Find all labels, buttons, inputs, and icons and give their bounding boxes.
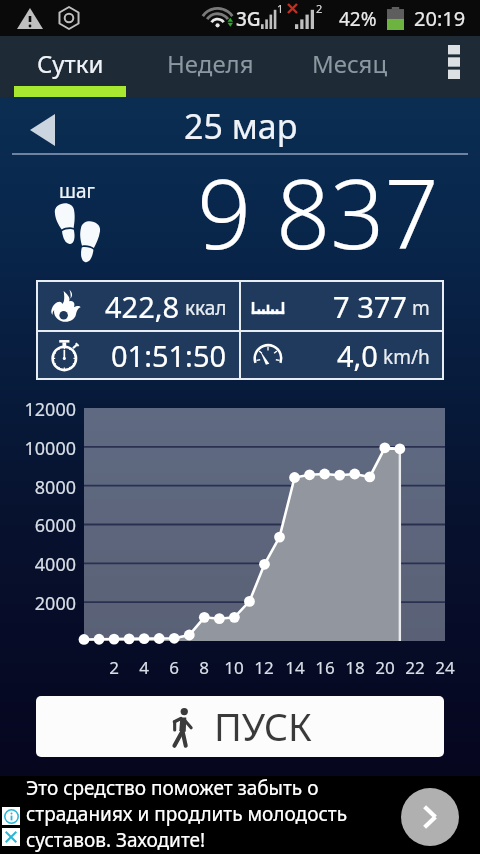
button[interactable]: More options bbox=[420, 36, 480, 97]
button[interactable]: Сутки bbox=[0, 36, 140, 97]
button[interactable]: Это средство поможет забыть о страданиях… bbox=[0, 776, 480, 854]
staticText: 20:19 bbox=[414, 5, 466, 32]
staticText: 10000 bbox=[0, 436, 76, 461]
staticText: 2000 bbox=[0, 591, 76, 616]
button[interactable]: 422,8 bbox=[38, 282, 239, 330]
button[interactable]: ПУСК bbox=[36, 696, 444, 757]
button[interactable]: Неделя bbox=[140, 36, 280, 97]
staticText: 18 bbox=[335, 656, 375, 679]
staticText: 8000 bbox=[0, 475, 76, 500]
staticText: Месяц bbox=[312, 47, 388, 80]
staticText: km/h bbox=[383, 344, 430, 370]
button[interactable]: Месяц bbox=[280, 36, 420, 97]
staticText: 10 bbox=[214, 656, 254, 679]
staticText: 42% bbox=[339, 6, 377, 32]
staticText: 9 837 bbox=[197, 147, 439, 255]
staticText: ПУСК bbox=[214, 700, 312, 752]
staticText: 14 bbox=[275, 656, 315, 679]
button[interactable]: Open advertisement bbox=[401, 788, 459, 846]
staticText: 12000 bbox=[0, 397, 76, 422]
staticText: Это средство поможет забыть о страданиях… bbox=[26, 775, 347, 853]
staticText: 16 bbox=[305, 656, 345, 679]
staticText: m bbox=[412, 295, 430, 321]
staticText: 422,8 bbox=[105, 287, 180, 326]
button[interactable]: Previous day bbox=[18, 106, 66, 154]
staticText: 01:51:50 bbox=[111, 336, 227, 375]
button[interactable]: 01:51:50 bbox=[38, 332, 239, 378]
staticText: 6000 bbox=[0, 513, 76, 538]
staticText: шаг bbox=[59, 178, 95, 204]
staticText: 7 377 bbox=[333, 287, 407, 326]
staticText: 6 bbox=[154, 656, 194, 679]
staticText: 12 bbox=[244, 656, 284, 679]
staticText: ккал bbox=[185, 295, 227, 321]
staticText: 3G bbox=[236, 6, 261, 32]
button[interactable]: 4,0 bbox=[241, 332, 442, 378]
staticText: Сутки bbox=[37, 47, 104, 80]
staticText: 25 мар bbox=[184, 103, 298, 149]
staticText: 2 bbox=[94, 656, 134, 679]
staticText: 4,0 bbox=[337, 336, 378, 375]
staticText: 24 bbox=[425, 656, 465, 679]
staticText: 4 bbox=[124, 656, 164, 679]
staticText: 20 bbox=[365, 656, 405, 679]
staticText: 1 bbox=[277, 1, 284, 16]
staticText: 22 bbox=[395, 656, 435, 679]
staticText: 8 bbox=[184, 656, 224, 679]
staticText: 2 bbox=[316, 1, 323, 16]
staticText: Неделя bbox=[167, 47, 254, 80]
staticText: 4000 bbox=[0, 552, 76, 577]
button[interactable]: 7 377 bbox=[241, 282, 442, 330]
